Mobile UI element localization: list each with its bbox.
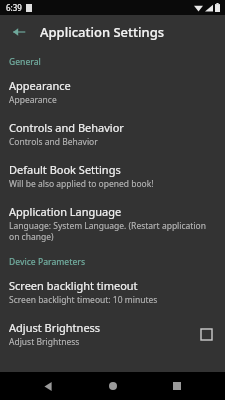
staticText: Application Language	[9, 204, 122, 219]
staticText: Device Parameters	[9, 256, 86, 268]
button[interactable]: Adjust Brightness	[0, 313, 225, 355]
staticText: Screen backlight timeout	[9, 278, 138, 293]
staticText: Screen backlight timeout: 10 minutes	[9, 294, 158, 306]
button[interactable]: Application Language	[0, 197, 225, 249]
button[interactable]: Back	[31, 372, 65, 400]
staticText: Default Book Settings	[9, 162, 121, 177]
button[interactable]: Recent apps	[160, 372, 194, 400]
staticText: Appearance	[9, 78, 71, 93]
staticText: Will be also applied to opened book!	[9, 178, 154, 190]
staticText: Adjust Brightness	[9, 320, 101, 335]
staticText: Controls and Behavior	[9, 120, 124, 135]
staticText: General	[9, 56, 41, 68]
staticText: Application Settings	[40, 23, 165, 41]
button[interactable]: Appearance	[0, 71, 225, 113]
staticText: Controls and Behavior	[9, 136, 98, 148]
button[interactable]: Controls and Behavior	[0, 113, 225, 155]
staticText: Language: System Language. (Restart appl…	[9, 220, 217, 242]
button[interactable]: Default Book Settings	[0, 155, 225, 197]
staticText: Adjust Brightness	[9, 336, 80, 348]
button[interactable]: Back	[4, 17, 34, 47]
button[interactable]: Home	[96, 372, 130, 400]
button[interactable]: Adjust Brightness checkbox	[195, 323, 217, 345]
button[interactable]: Screen backlight timeout	[0, 271, 225, 313]
staticText: 6:39	[6, 2, 22, 13]
staticText: Appearance	[9, 94, 57, 106]
